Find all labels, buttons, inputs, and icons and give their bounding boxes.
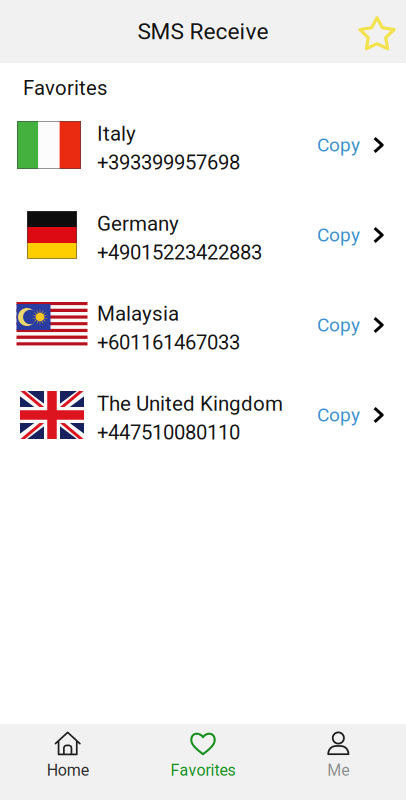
button[interactable]: Home [0, 724, 135, 800]
button[interactable]: Favorites [135, 724, 271, 800]
staticText: Malaysia [97, 302, 179, 326]
staticText: Home [47, 761, 89, 780]
button[interactable]: Germany [0, 190, 406, 280]
button[interactable]: Favorites [359, 5, 406, 57]
staticText: Italy [97, 122, 136, 146]
staticText: +393399957698 [97, 151, 240, 174]
staticText: Favorites [23, 76, 107, 100]
staticText: Me [327, 761, 349, 780]
staticText: Copy [317, 314, 360, 336]
button[interactable]: Malaysia [0, 280, 406, 370]
staticText: +49015223422883 [97, 241, 262, 264]
staticText: The United Kingdom [97, 392, 283, 416]
staticText: +447510080110 [97, 421, 240, 444]
staticText: Copy [317, 404, 360, 426]
button[interactable]: Italy [0, 100, 406, 190]
staticText: +601161467033 [97, 331, 240, 354]
staticText: Copy [317, 224, 360, 246]
staticText: Favorites [170, 761, 235, 780]
button[interactable]: The United Kingdom [0, 370, 406, 460]
staticText: Copy [317, 134, 360, 156]
button[interactable]: Me [271, 724, 406, 800]
staticText: SMS Receive [137, 18, 268, 45]
staticText: Germany [97, 212, 179, 236]
